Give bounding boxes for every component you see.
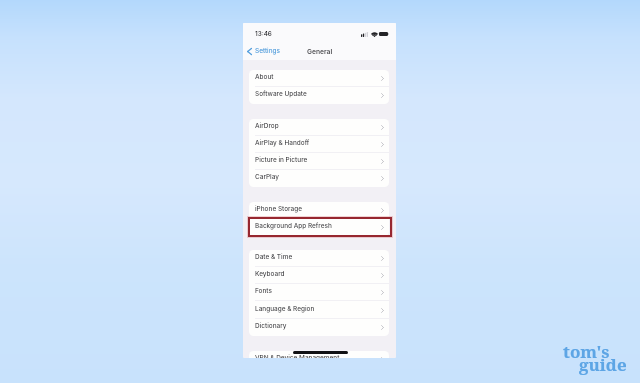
staticText: Dictionary [255, 322, 287, 330]
button[interactable]: AirPlay & Handoff [249, 136, 389, 153]
staticText: iPhone Storage [255, 205, 302, 213]
staticText: Background App Refresh [255, 222, 332, 230]
button[interactable]: About [249, 70, 389, 87]
button[interactable]: Keyboard [249, 267, 389, 284]
staticText: 13:46 [255, 30, 272, 38]
staticText: About [255, 73, 274, 81]
button[interactable]: Fonts [249, 284, 389, 301]
button[interactable]: Software Update [249, 87, 389, 104]
staticText: CarPlay [255, 173, 279, 181]
staticText: Language & Region [255, 305, 315, 313]
staticText: AirDrop [255, 122, 279, 130]
button[interactable]: Language & Region [249, 302, 389, 319]
staticText: AirPlay & Handoff [255, 139, 310, 147]
staticText: Picture in Picture [255, 156, 308, 164]
staticText: guide [579, 353, 627, 376]
button[interactable]: Picture in Picture [249, 153, 389, 170]
staticText: tom's [563, 340, 610, 363]
staticText: VPN & Device Management [255, 354, 340, 358]
button[interactable]: iPhone Storage [249, 202, 389, 219]
button[interactable]: Date & Time [249, 250, 389, 267]
staticText: Keyboard [255, 270, 285, 278]
staticText: Date & Time [255, 253, 293, 261]
staticText: Software Update [255, 90, 307, 98]
button[interactable]: Background App Refresh [249, 219, 389, 236]
button[interactable]: CarPlay [249, 170, 389, 187]
staticText: Fonts [255, 287, 272, 295]
button[interactable]: Dictionary [249, 319, 389, 336]
staticText: General [307, 48, 333, 56]
button[interactable]: AirDrop [249, 119, 389, 136]
button[interactable]: VPN & Device Management [249, 351, 389, 358]
staticText: Settings [255, 47, 280, 55]
button[interactable]: Settings [245, 45, 282, 57]
